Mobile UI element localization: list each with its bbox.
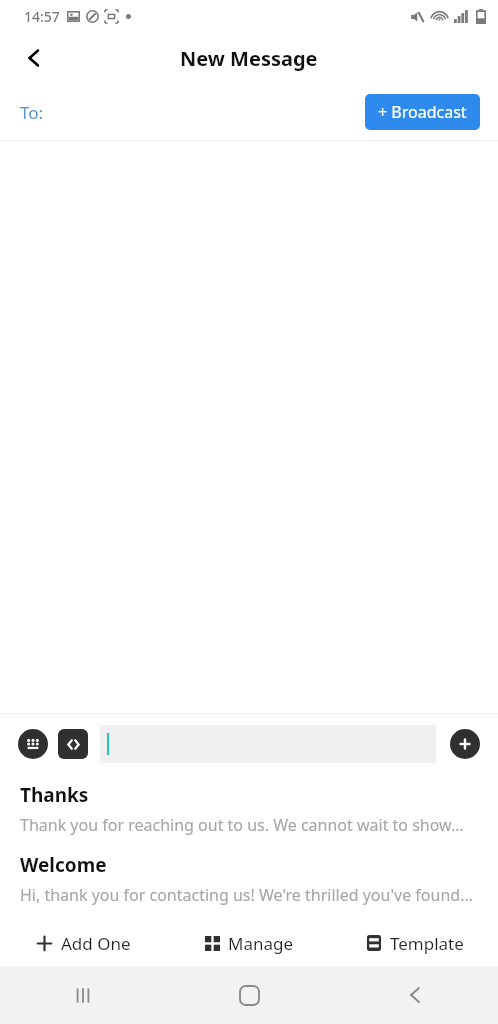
button[interactable]: Keyboard: [18, 729, 48, 759]
staticText: Thanks: [20, 782, 89, 808]
button[interactable]: Manage: [166, 920, 332, 966]
button[interactable]: Back: [10, 34, 58, 82]
button[interactable]: Message input: [100, 725, 436, 763]
button[interactable]: Home: [166, 966, 332, 1024]
staticText: To:: [20, 101, 44, 124]
button[interactable]: Add One: [0, 920, 166, 966]
staticText: Thank you for reaching out to us. We can…: [20, 814, 464, 836]
staticText: Manage: [228, 932, 294, 955]
button[interactable]: Welcome: [0, 844, 498, 914]
button[interactable]: Back: [332, 966, 498, 1024]
staticText: New Message: [180, 45, 318, 72]
button[interactable]: Code: [58, 729, 88, 759]
button[interactable]: Add: [450, 729, 480, 759]
staticText: + Broadcast: [378, 101, 467, 123]
staticText: Template: [390, 932, 464, 955]
staticText: 14:57: [24, 7, 60, 26]
button[interactable]: + Broadcast: [365, 94, 480, 130]
staticText: Hi, thank you for contacting us! We're t…: [20, 884, 473, 906]
button[interactable]: Thanks: [0, 774, 498, 844]
staticText: Welcome: [20, 852, 107, 878]
staticText: Add One: [61, 932, 131, 955]
button[interactable]: Template: [332, 920, 498, 966]
button[interactable]: Recents: [0, 966, 166, 1024]
